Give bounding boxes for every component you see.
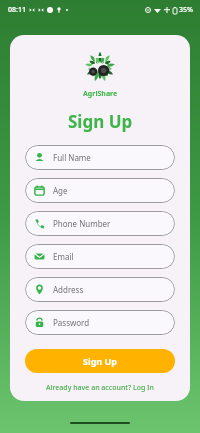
staticText: AgriShare bbox=[83, 89, 118, 99]
button[interactable]: Age bbox=[25, 178, 175, 203]
staticText: Sign Up bbox=[83, 355, 118, 367]
staticText: Email bbox=[53, 251, 74, 262]
staticText: Full Name bbox=[53, 152, 91, 163]
button[interactable]: Sign Up bbox=[25, 349, 175, 373]
staticText: Address bbox=[53, 284, 84, 295]
button[interactable]: Already have an account? Log In bbox=[10, 383, 190, 393]
button[interactable]: Full Name bbox=[25, 145, 175, 170]
button[interactable]: Password bbox=[25, 310, 175, 335]
staticText: Sign Up bbox=[68, 110, 133, 133]
button[interactable]: Address bbox=[25, 277, 175, 302]
staticText: Already have an account? Log In bbox=[46, 383, 154, 393]
staticText: 35% bbox=[179, 5, 193, 15]
staticText: Age bbox=[53, 185, 68, 196]
button[interactable]: Phone Number bbox=[25, 211, 175, 236]
staticText: 08:11 bbox=[8, 5, 26, 15]
button[interactable]: Email bbox=[25, 244, 175, 269]
staticText: Phone Number bbox=[53, 218, 111, 229]
staticText: Password bbox=[53, 317, 90, 328]
